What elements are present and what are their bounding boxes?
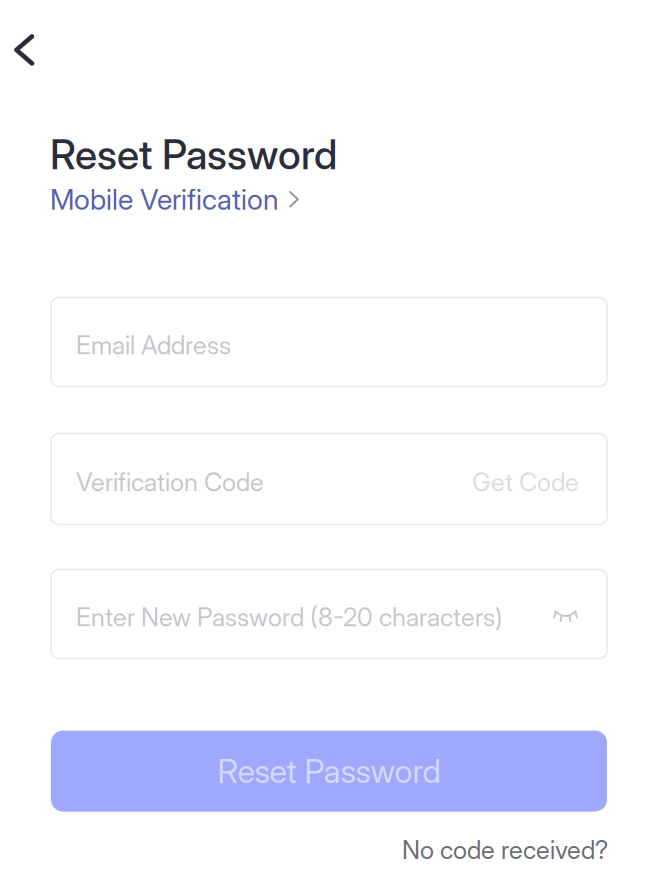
staticText: Email Address [76, 330, 231, 360]
button[interactable]: Mobile Verification [0, 179, 299, 219]
staticText: Reset Password [217, 751, 440, 791]
button[interactable]: Back [0, 0, 56, 86]
button[interactable]: Reset Password [51, 731, 607, 812]
button[interactable]: Get Code [472, 461, 579, 497]
staticText: Verification Code [76, 467, 264, 497]
staticText: Mobile Verification [50, 182, 279, 216]
button[interactable]: Show password [553, 605, 578, 623]
staticText: Reset Password [50, 130, 337, 179]
staticText: Get Code [472, 467, 579, 497]
staticText: No code received? [402, 835, 608, 865]
staticText: Enter New Password (8-20 characters) [76, 602, 503, 632]
button[interactable]: No code received? [402, 835, 608, 865]
